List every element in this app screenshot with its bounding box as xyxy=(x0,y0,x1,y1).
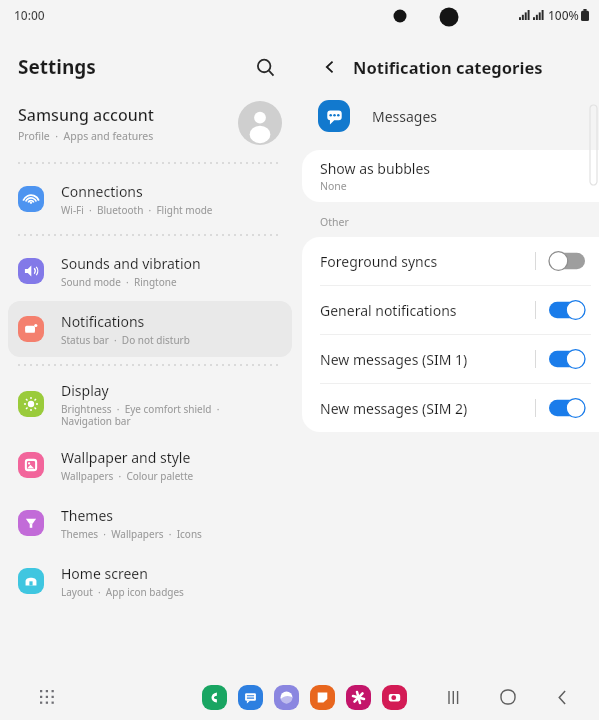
staticText: Wi-Fi · Bluetooth · Flight mode xyxy=(61,203,213,217)
button[interactable]: Back xyxy=(547,682,577,712)
button[interactable]: New messages (SIM 1) xyxy=(302,335,599,383)
button[interactable]: Internet xyxy=(274,685,299,710)
staticText: General notifications xyxy=(320,301,535,320)
button[interactable]: Recents xyxy=(439,682,469,712)
button[interactable]: Foreground syncs xyxy=(302,237,599,285)
button[interactable]: Phone xyxy=(202,685,227,710)
staticText: Samsung account xyxy=(18,104,154,126)
staticText: Settings xyxy=(18,54,96,80)
staticText: Status bar · Do not disturb xyxy=(61,333,190,347)
staticText: Connections xyxy=(61,182,143,201)
staticText: Display xyxy=(61,381,109,400)
button[interactable]: Galaxy Store xyxy=(346,685,371,710)
button[interactable]: Home xyxy=(493,682,523,712)
button[interactable]: Back xyxy=(314,51,346,83)
staticText: Brightness · Eye comfort shield · Naviga… xyxy=(61,402,220,428)
button[interactable]: Sounds and vibration xyxy=(8,243,292,299)
button[interactable]: General notifications xyxy=(302,286,599,334)
staticText: 100% xyxy=(548,7,579,23)
staticText: None xyxy=(320,179,347,193)
staticText: Messages xyxy=(372,107,438,126)
button[interactable]: Messages xyxy=(238,685,263,710)
button[interactable]: Notes xyxy=(310,685,335,710)
staticText: Home screen xyxy=(61,564,148,583)
staticText: Themes · Wallpapers · Icons xyxy=(61,527,202,541)
button[interactable]: Apps xyxy=(30,680,64,714)
button[interactable]: Show as bubbles xyxy=(302,150,599,202)
staticText: 10:00 xyxy=(14,7,45,23)
button[interactable]: Home screen xyxy=(8,553,292,609)
staticText: Notification categories xyxy=(353,56,543,78)
staticText: Show as bubbles xyxy=(320,159,431,178)
staticText: Notifications xyxy=(61,312,145,331)
staticText: Sound mode · Ringtone xyxy=(61,275,177,289)
staticText: Themes xyxy=(61,506,114,525)
staticText: Foreground syncs xyxy=(320,252,535,271)
staticText: Wallpapers · Colour palette xyxy=(61,469,194,483)
staticText: New messages (SIM 2) xyxy=(320,399,535,418)
button[interactable]: Camera xyxy=(382,685,407,710)
button[interactable]: Display xyxy=(8,373,292,435)
button[interactable]: Messages xyxy=(300,90,599,142)
button[interactable]: Search xyxy=(248,50,282,84)
button[interactable]: Connections xyxy=(8,171,292,227)
staticText: New messages (SIM 1) xyxy=(320,350,535,369)
staticText: Wallpaper and style xyxy=(61,448,191,467)
button[interactable]: Notifications xyxy=(8,301,292,357)
staticText: Other xyxy=(320,215,349,229)
button[interactable]: Wallpaper and style xyxy=(8,437,292,493)
button[interactable]: Themes xyxy=(8,495,292,551)
staticText: Layout · App icon badges xyxy=(61,585,184,599)
button[interactable]: New messages (SIM 2) xyxy=(302,384,599,432)
button[interactable]: Samsung account xyxy=(0,90,300,156)
staticText: Sounds and vibration xyxy=(61,254,201,273)
staticText: Profile · Apps and features xyxy=(18,129,154,143)
